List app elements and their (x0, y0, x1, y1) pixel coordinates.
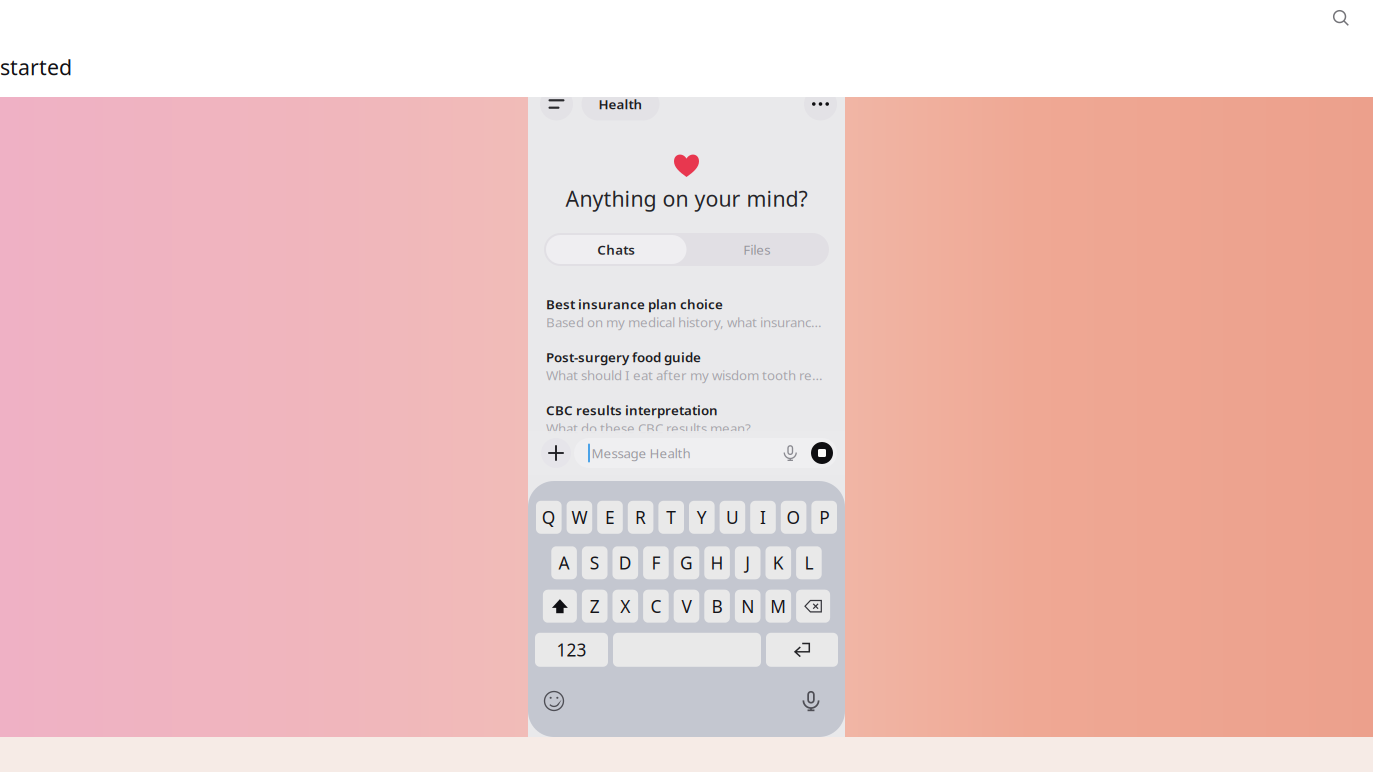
button[interactable]: G (674, 546, 699, 579)
staticText: E (605, 506, 615, 529)
staticText: L (804, 551, 813, 574)
staticText: What do these CBC results mean? (546, 419, 751, 437)
staticText: X (620, 595, 630, 618)
staticText: N (741, 595, 754, 618)
staticText: V (681, 595, 691, 618)
button[interactable]: Post-surgery food guide (528, 350, 845, 403)
button[interactable]: Shift (543, 590, 577, 623)
button[interactable]: D (612, 546, 638, 579)
button[interactable]: More (804, 87, 837, 120)
staticText: Files (743, 241, 770, 258)
button[interactable]: E (597, 501, 623, 534)
staticText: C (650, 595, 661, 618)
staticText: 123 (556, 638, 586, 661)
staticText: Chats (597, 241, 635, 258)
button[interactable]: Sidebar (540, 87, 573, 120)
button[interactable]: Files (686, 235, 827, 264)
staticText: Post-surgery food guide (546, 348, 701, 366)
staticText: What should I eat after my wisdom tooth … (546, 366, 823, 384)
staticText: Health (598, 95, 642, 113)
button[interactable]: F (643, 546, 669, 579)
button[interactable]: I (750, 501, 776, 534)
button[interactable]: Delete (796, 590, 830, 623)
button[interactable]: H (704, 546, 730, 579)
staticText: K (773, 551, 784, 574)
button[interactable]: S (582, 546, 607, 579)
button[interactable]: Search (1326, 3, 1356, 33)
staticText: I (760, 506, 766, 529)
button[interactable]: J (735, 546, 760, 579)
button[interactable]: Chats (546, 235, 686, 264)
button[interactable]: return (766, 633, 838, 667)
button[interactable]: M (765, 590, 791, 623)
button[interactable]: A (551, 546, 577, 579)
staticText: T (666, 506, 676, 529)
button[interactable]: Z (582, 590, 607, 623)
button[interactable]: U (720, 501, 745, 534)
staticText: M (770, 595, 786, 618)
staticText: B (712, 595, 723, 618)
button[interactable]: L (796, 546, 822, 579)
staticText: Y (697, 506, 707, 529)
button[interactable]: CBC results interpretation (528, 403, 845, 456)
button[interactable]: O (781, 501, 806, 534)
button[interactable]: B (704, 590, 730, 623)
button[interactable]: T (658, 501, 684, 534)
staticText: W (571, 506, 587, 529)
staticText: U (726, 506, 739, 529)
staticText: G (680, 551, 693, 574)
button[interactable]: Dictate (778, 444, 802, 462)
button[interactable]: 123 (535, 633, 608, 667)
button[interactable]: Dictate (802, 689, 820, 712)
button[interactable]: N (735, 590, 760, 623)
staticText: R (635, 506, 646, 529)
staticText: O (787, 506, 801, 529)
staticText: H (711, 551, 724, 574)
staticText: F (651, 551, 660, 574)
staticText: Based on my medical history, what insura… (546, 313, 822, 331)
button[interactable]: C (643, 590, 669, 623)
staticText: Q (542, 506, 556, 529)
button[interactable]: X (612, 590, 638, 623)
staticText: Z (590, 595, 600, 618)
staticText: started (0, 53, 72, 81)
staticText: Anything on your mind? (565, 184, 807, 213)
button[interactable]: Emoji (543, 690, 564, 712)
staticText: CBC results interpretation (546, 401, 718, 419)
staticText: P (819, 506, 829, 529)
button[interactable]: K (765, 546, 791, 579)
staticText: D (619, 551, 632, 574)
button[interactable]: Best insurance plan choice (528, 297, 845, 350)
button[interactable]: Q (536, 501, 562, 534)
staticText: Best insurance plan choice (546, 295, 723, 313)
staticText: A (559, 551, 570, 574)
button[interactable]: Y (689, 501, 715, 534)
button[interactable]: P (811, 501, 837, 534)
staticText: Message Health (591, 444, 690, 462)
staticText: S (590, 551, 600, 574)
button[interactable]: Add (541, 438, 571, 468)
button[interactable]: V (674, 590, 699, 623)
button[interactable]: R (628, 501, 653, 534)
button[interactable]: W (567, 501, 592, 534)
button[interactable]: Health (581, 87, 659, 120)
staticText: J (745, 551, 750, 574)
